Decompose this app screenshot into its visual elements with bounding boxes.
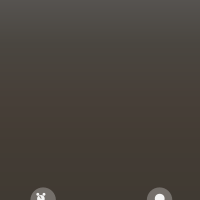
button[interactable]: Alarm [30,187,56,200]
button[interactable]: Sleep [147,187,172,200]
